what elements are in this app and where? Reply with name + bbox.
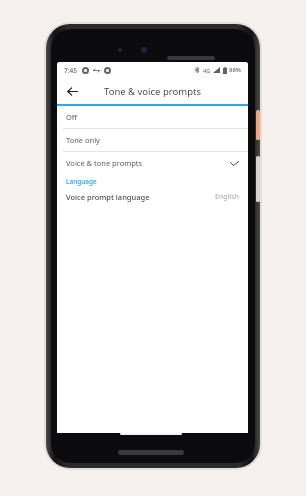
button[interactable]: Off: [57, 106, 248, 128]
staticText: English: [215, 192, 239, 202]
staticText: Language: [66, 177, 97, 186]
button[interactable]: Tone only: [57, 129, 248, 151]
staticText: 7:45: [64, 66, 77, 75]
button[interactable]: Voice prompt language: [57, 189, 248, 204]
staticText: 4G: [203, 67, 211, 74]
staticText: Voice prompt language: [66, 192, 150, 202]
staticText: 88%: [229, 66, 241, 74]
staticText: Tone only: [66, 135, 100, 145]
button[interactable]: Back: [62, 81, 82, 101]
staticText: Voice & tone prompts: [66, 158, 143, 168]
button[interactable]: Voice & tone prompts: [57, 152, 248, 174]
staticText: Tone & voice prompts: [104, 85, 201, 98]
staticText: Off: [66, 112, 78, 122]
